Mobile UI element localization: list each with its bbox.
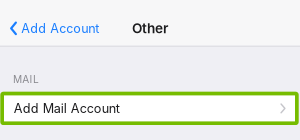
staticText: Add Account <box>21 21 99 36</box>
button[interactable]: Add Mail Account <box>0 92 299 125</box>
staticText: Other <box>132 20 168 37</box>
staticText: Add Mail Account <box>14 101 120 116</box>
staticText: MAIL <box>13 73 39 85</box>
button[interactable]: Add Account <box>0 0 99 46</box>
